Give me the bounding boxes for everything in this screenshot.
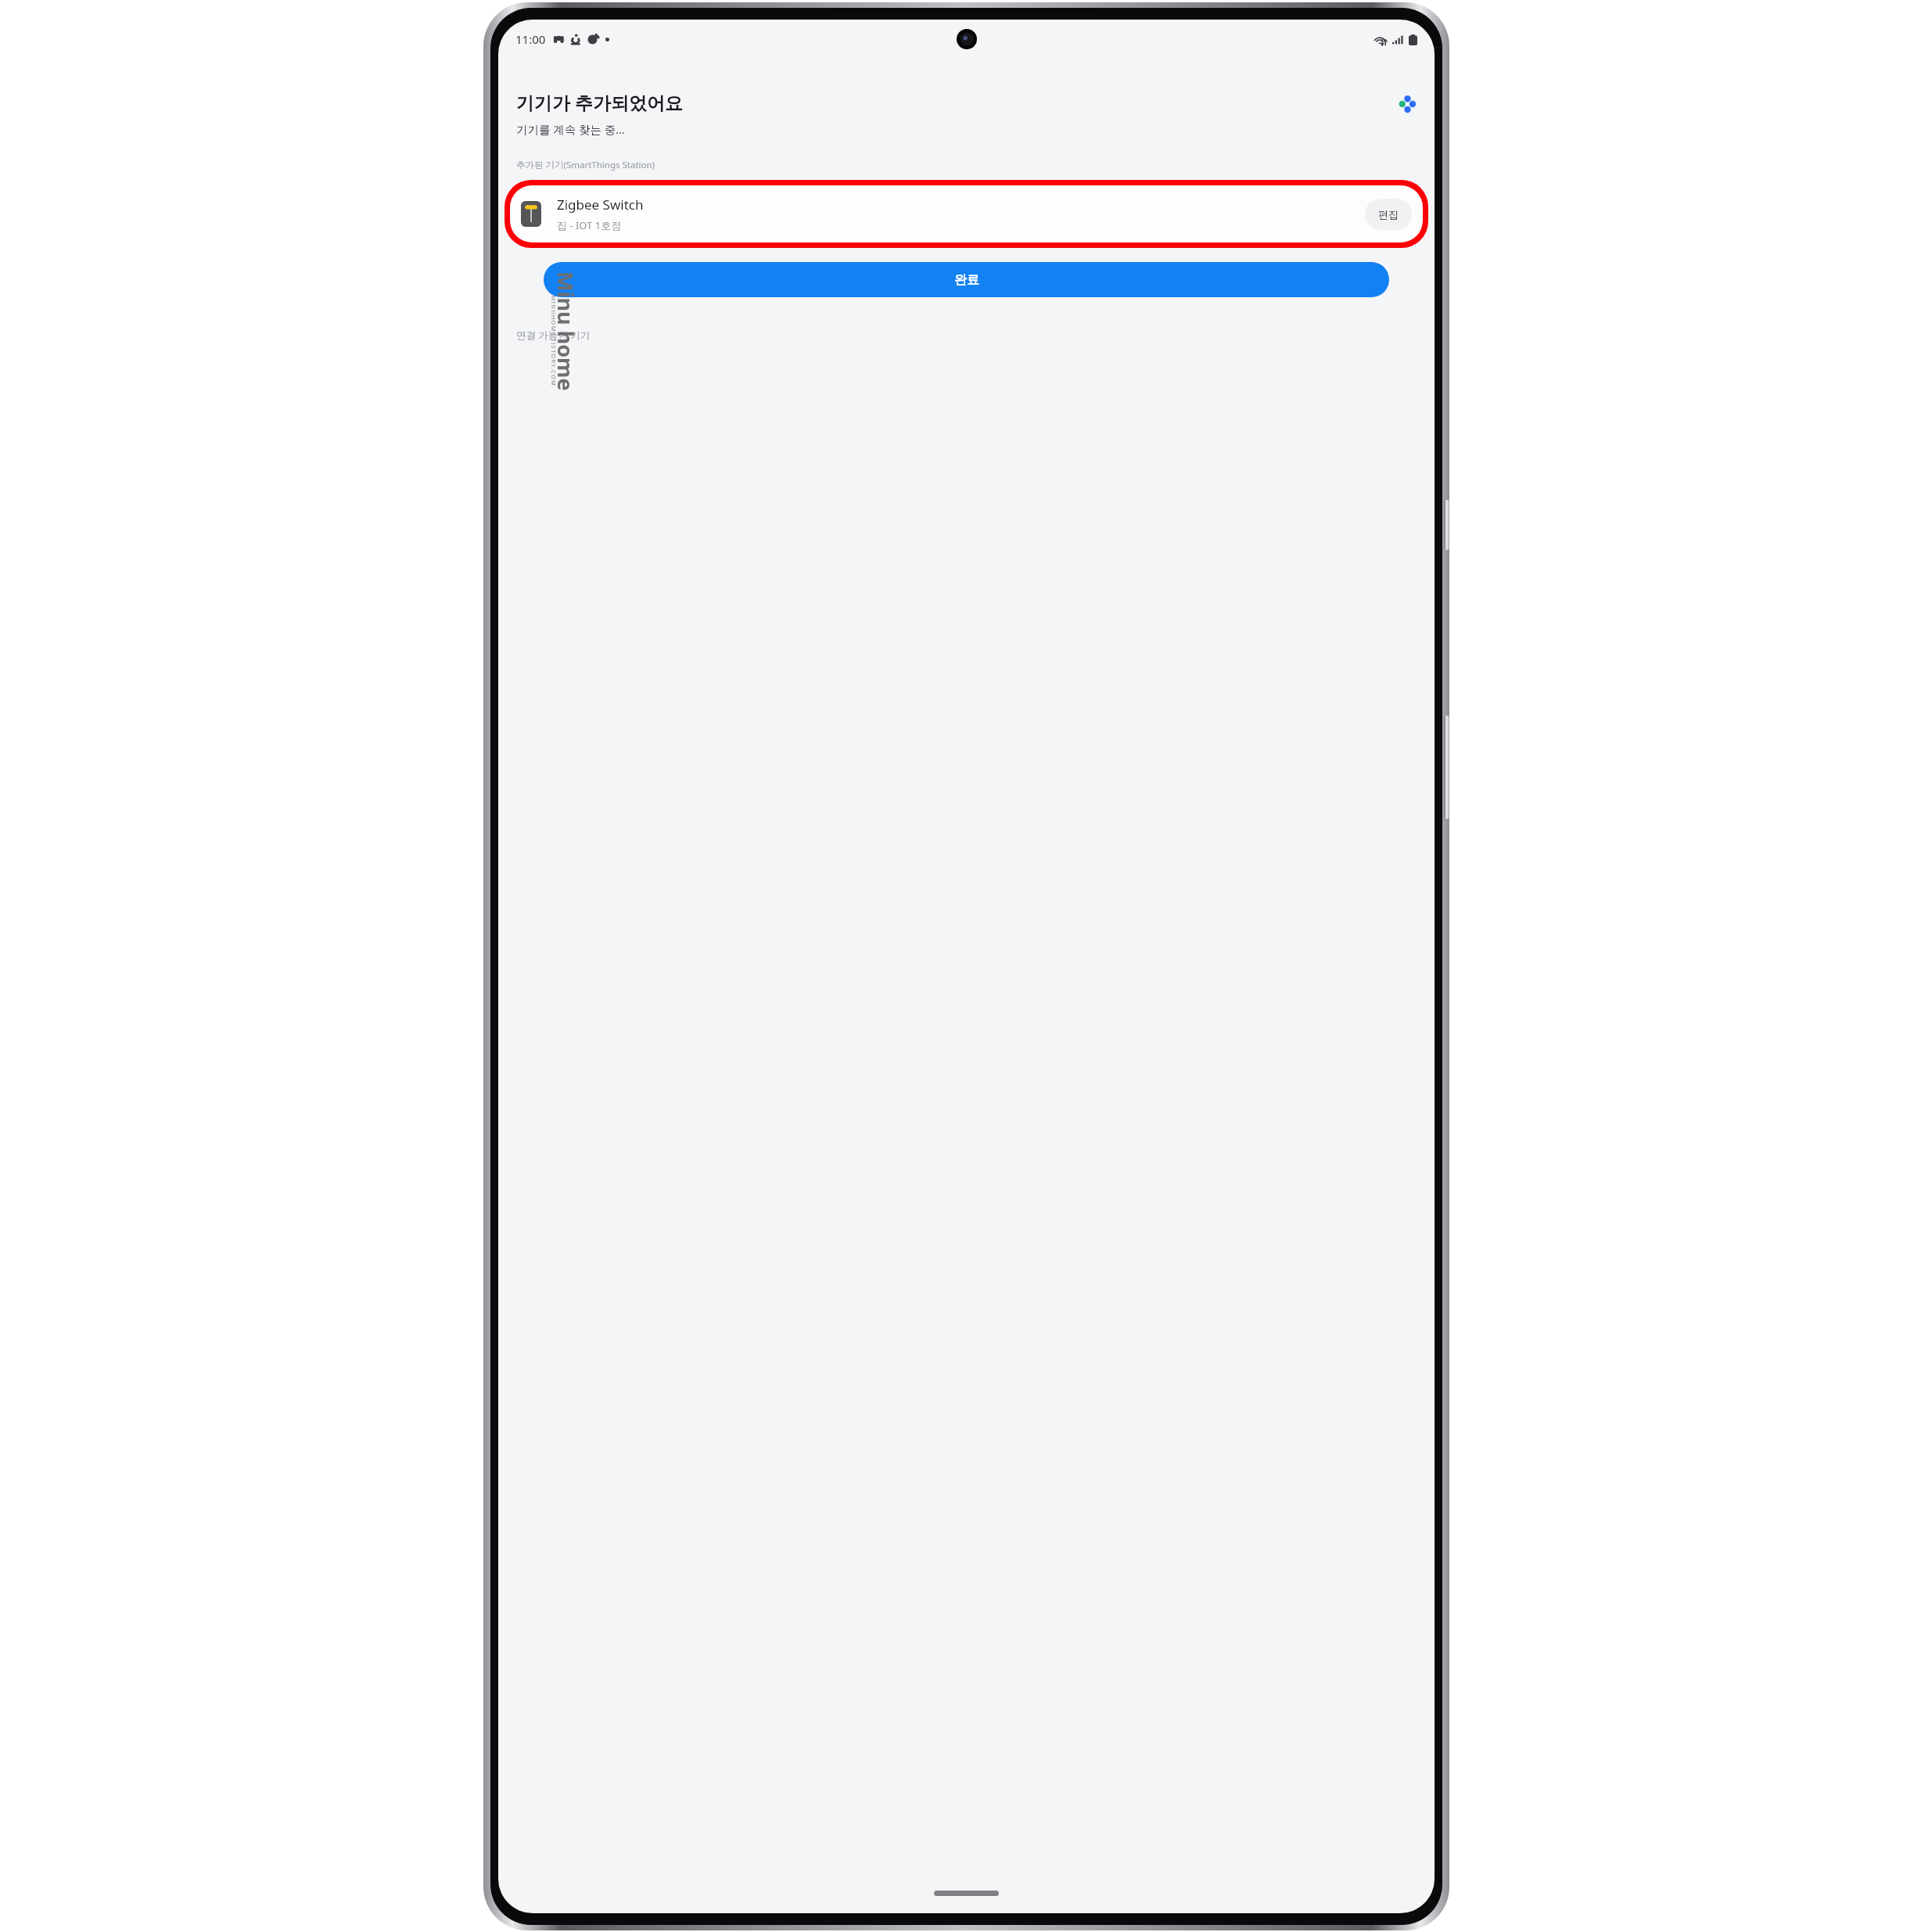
staticText: 11:00: [515, 31, 546, 47]
button[interactable]: 편집: [1365, 199, 1412, 230]
staticText: 연결 가능한 기기: [516, 329, 591, 342]
staticText: 집 - IOT 1호점: [557, 218, 622, 232]
staticText: 기기가 추가되었어요: [516, 90, 683, 114]
staticText: 기기를 계속 찾는 중…: [516, 121, 625, 137]
staticText: 완료: [954, 272, 979, 288]
button[interactable]: 완료: [544, 262, 1389, 297]
staticText: 추가된 기기(SmartThings Station): [516, 159, 655, 171]
button[interactable]: SmartThings: [1398, 95, 1417, 113]
staticText: 편집: [1378, 208, 1399, 221]
staticText: Minu home: [551, 271, 580, 391]
button[interactable]: Zigbee Switch: [510, 185, 1423, 242]
staticText: MINUHOME.TISTORY.COM: [549, 295, 557, 387]
staticText: Zigbee Switch: [557, 196, 644, 214]
